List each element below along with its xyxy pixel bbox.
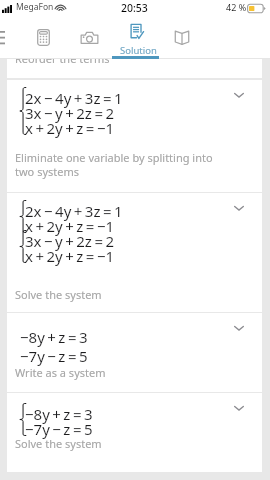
staticText: Solve the system bbox=[15, 436, 102, 451]
staticText: x + 2y + z = −1 bbox=[25, 216, 115, 236]
button[interactable]: Expand step bbox=[230, 319, 248, 337]
button[interactable] bbox=[7, 40, 262, 78]
staticText: Eliminate one variable by splitting into bbox=[15, 150, 213, 165]
button[interactable] bbox=[7, 393, 262, 472]
button[interactable]: Expand step bbox=[230, 399, 248, 417]
staticText: x + 2y + z = −1 bbox=[25, 118, 115, 138]
button[interactable] bbox=[7, 193, 262, 312]
button[interactable]: Book bbox=[174, 30, 190, 45]
button[interactable]: Camera bbox=[80, 31, 99, 45]
staticText: 2x − 4y + 3z = 1 bbox=[25, 88, 123, 108]
button[interactable]: Expand step bbox=[230, 86, 248, 104]
staticText: MegaFon bbox=[16, 1, 54, 13]
staticText: two systems bbox=[15, 164, 80, 179]
staticText: x + 2y + z = −1 bbox=[25, 246, 115, 266]
staticText: −8y + z = 3 bbox=[25, 404, 93, 424]
button[interactable]: Solution bbox=[112, 20, 159, 59]
staticText: −7y − z = 5 bbox=[20, 346, 88, 366]
button[interactable]: Menu bbox=[0, 29, 5, 45]
button[interactable] bbox=[7, 80, 262, 192]
staticText: 42 % bbox=[226, 1, 247, 13]
staticText: Solution bbox=[120, 44, 157, 57]
staticText: −8y + z = 3 bbox=[20, 327, 88, 347]
staticText: 3x − y + 2z = 2 bbox=[25, 231, 115, 251]
staticText: 3x − y + 2z = 2 bbox=[25, 103, 115, 123]
button[interactable]: Calculator bbox=[37, 29, 50, 46]
button[interactable]: Expand step bbox=[230, 199, 248, 217]
staticText: 2x − 4y + 3z = 1 bbox=[25, 201, 123, 221]
staticText: Write as a system bbox=[15, 365, 106, 380]
staticText: Solve the system bbox=[15, 287, 102, 302]
staticText: 20:53 bbox=[121, 1, 148, 15]
staticText: Reorder the terms bbox=[15, 51, 110, 66]
button[interactable] bbox=[7, 313, 262, 392]
staticText: −7y − z = 5 bbox=[25, 419, 93, 439]
